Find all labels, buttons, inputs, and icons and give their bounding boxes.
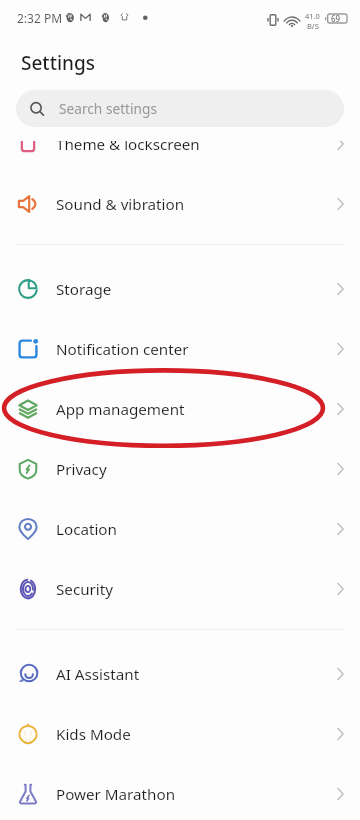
staticText: Theme & lockscreen (56, 141, 200, 155)
button[interactable]: Privacy (0, 439, 360, 499)
staticText: Power Marathon (56, 784, 176, 805)
button[interactable]: App management (0, 379, 360, 439)
staticText: Search settings (59, 99, 158, 118)
staticText: Security (56, 579, 113, 600)
button[interactable]: Storage (0, 259, 360, 319)
button[interactable]: Location (0, 499, 360, 559)
staticText: Privacy (56, 459, 107, 480)
staticText: App management (56, 399, 185, 420)
button[interactable]: Theme & lockscreen (0, 141, 360, 174)
staticText: 2:32 PM (17, 10, 63, 26)
staticText: 69 (331, 13, 341, 24)
button[interactable]: Security (0, 559, 360, 619)
button[interactable]: Power Marathon (0, 764, 360, 820)
staticText: Notification center (56, 339, 189, 360)
staticText: Storage (56, 279, 112, 300)
staticText: Settings (21, 50, 95, 76)
staticText: 41.0 (305, 11, 320, 21)
staticText: B/S (307, 21, 319, 31)
button[interactable]: AI Assistant (0, 644, 360, 704)
staticText: Kids Mode (56, 724, 131, 745)
button[interactable]: Kids Mode (0, 704, 360, 764)
button[interactable]: Sound & vibration (0, 174, 360, 234)
staticText: Sound & vibration (56, 194, 185, 215)
staticText: AI Assistant (56, 664, 140, 685)
staticText: Location (56, 519, 117, 540)
button[interactable]: Notification center (0, 319, 360, 379)
button[interactable]: Search settings (16, 90, 344, 127)
